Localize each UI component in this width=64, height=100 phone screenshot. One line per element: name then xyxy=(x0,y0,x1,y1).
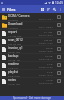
staticText: 12:45 xyxy=(55,1,63,5)
staticText: 18 KB xyxy=(46,78,53,81)
staticText: report xyxy=(8,30,17,34)
button[interactable]: Select scan_0012 xyxy=(53,37,64,45)
button[interactable]: DCIM / Camera xyxy=(0,13,64,21)
staticText: 2 KB xyxy=(47,62,53,65)
staticText: notes xyxy=(8,78,16,82)
staticText: playlist xyxy=(8,70,18,74)
button[interactable]: Download xyxy=(0,21,64,29)
staticText: readme xyxy=(8,62,19,66)
staticText: backup xyxy=(8,54,19,58)
staticText: scan_0012 xyxy=(8,38,23,42)
staticText: 44 MB xyxy=(45,54,53,57)
button[interactable]: Select all xyxy=(39,5,45,13)
staticText: 240 KB jpg xyxy=(8,42,22,45)
button[interactable]: Open navigation menu xyxy=(0,5,7,13)
button[interactable]: Files xyxy=(7,7,16,12)
button[interactable]: Select invoice_q1 xyxy=(53,45,64,53)
staticText: Sponsored · Get more storage xyxy=(13,96,51,100)
button[interactable]: Select Download xyxy=(53,21,64,29)
staticText: 03/05 13:12 xyxy=(39,73,53,76)
staticText: 25 items xyxy=(8,18,19,21)
staticText: 03/07 08:17 xyxy=(39,57,53,60)
staticText: 6 KB m3u xyxy=(8,74,20,77)
staticText: 2 KB txt xyxy=(8,66,18,69)
button[interactable]: Select notes xyxy=(53,77,64,85)
staticText: 03/12 14:21 xyxy=(39,17,53,20)
staticText: invoice_q1 xyxy=(8,46,23,50)
staticText: 03/08 16:05 xyxy=(39,49,53,52)
button[interactable]: Select readme xyxy=(53,61,64,69)
button[interactable]: playlist xyxy=(0,69,64,77)
staticText: 1.2 MB pdf xyxy=(8,34,22,37)
staticText: 18 KB md xyxy=(8,82,20,85)
staticText: 03/10 18:44 xyxy=(39,33,53,36)
staticText: 12 items xyxy=(8,26,19,29)
staticText: DCIM / Camera xyxy=(8,14,30,18)
button[interactable]: Select backup xyxy=(53,53,64,61)
button[interactable]: Select report xyxy=(53,29,64,37)
button[interactable]: report xyxy=(0,29,64,37)
button[interactable]: backup xyxy=(0,53,64,61)
staticText: 03/04 07:40 xyxy=(39,81,53,84)
staticText: 88 KB xyxy=(46,46,53,49)
staticText: 44 MB zip xyxy=(8,58,21,61)
staticText: 240 KB xyxy=(44,38,53,41)
button[interactable]: Select DCIM / Camera xyxy=(53,13,64,21)
button[interactable]: Sponsored · Get more storage xyxy=(0,96,64,100)
staticText: Download xyxy=(8,22,23,26)
staticText: 03/11 09:02 xyxy=(39,25,53,28)
staticText: 6 KB xyxy=(47,70,53,73)
button[interactable]: scan_0012 xyxy=(0,37,64,45)
button[interactable]: Search xyxy=(51,5,57,13)
button[interactable]: invoice_q1 xyxy=(0,45,64,53)
staticText: 03/06 21:55 xyxy=(39,65,53,68)
button[interactable]: Sort xyxy=(45,5,51,13)
button[interactable]: More options xyxy=(57,5,63,13)
staticText: 88 KB doc xyxy=(8,50,21,53)
staticText: 03/09 11:30 xyxy=(39,41,53,44)
button[interactable]: readme xyxy=(0,61,64,69)
staticText: 2.1 MB xyxy=(44,30,53,33)
button[interactable]: Select playlist xyxy=(53,69,64,77)
button[interactable]: notes xyxy=(0,77,64,85)
